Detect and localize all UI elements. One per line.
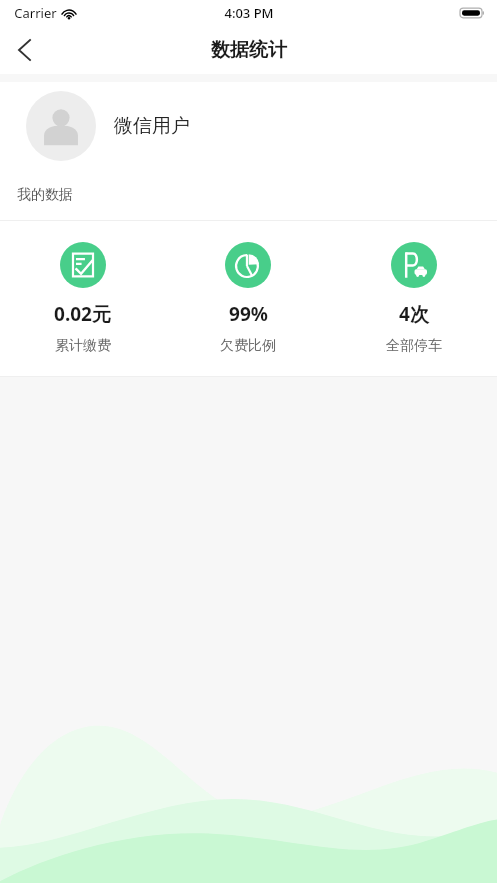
staticText: 4:03 PM — [224, 4, 274, 22]
button[interactable]: 微信用户 — [0, 82, 497, 170]
staticText: 99% — [229, 301, 268, 327]
staticText: 累计缴费 — [55, 337, 111, 355]
staticText: 我的数据 — [17, 186, 73, 204]
button[interactable]: 4次 — [331, 236, 497, 361]
button[interactable]: 99% — [165, 236, 331, 361]
staticText: 0.02元 — [54, 301, 111, 327]
staticText: 微信用户 — [114, 114, 190, 138]
staticText: 欠费比例 — [220, 337, 276, 355]
staticText: 4次 — [399, 301, 429, 327]
staticText: 数据统计 — [211, 38, 287, 62]
button[interactable]: Back — [0, 26, 48, 74]
button[interactable]: 0.02元 — [0, 236, 165, 361]
staticText: 全部停车 — [386, 337, 442, 355]
staticText: Carrier — [14, 4, 57, 22]
